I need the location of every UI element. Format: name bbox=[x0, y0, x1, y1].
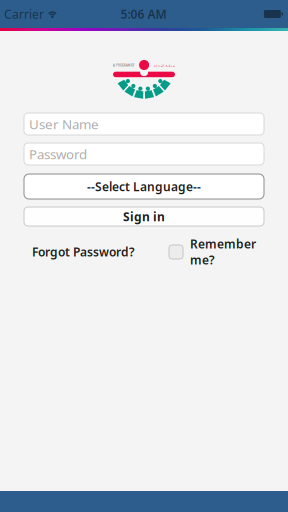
staticText: Forgot Password? bbox=[32, 244, 135, 260]
button[interactable]: --Select Language-- bbox=[24, 174, 264, 199]
button[interactable]: Forgot Password? bbox=[32, 244, 135, 260]
staticText: --Select Language-- bbox=[87, 178, 201, 194]
staticText: Remember me? bbox=[190, 236, 256, 268]
staticText: User Name bbox=[29, 115, 99, 133]
staticText: Carrier bbox=[4, 6, 44, 22]
staticText: Password bbox=[29, 145, 87, 163]
button[interactable]: Remember me? bbox=[169, 236, 256, 268]
staticText: A PROGRAM OF bbox=[113, 64, 134, 67]
staticText: بـرنـامـج الـرعـايـة bbox=[153, 64, 175, 67]
staticText: Sign in bbox=[123, 208, 165, 224]
button[interactable]: Sign in bbox=[24, 207, 264, 226]
staticText: 5:06 AM bbox=[120, 6, 166, 22]
